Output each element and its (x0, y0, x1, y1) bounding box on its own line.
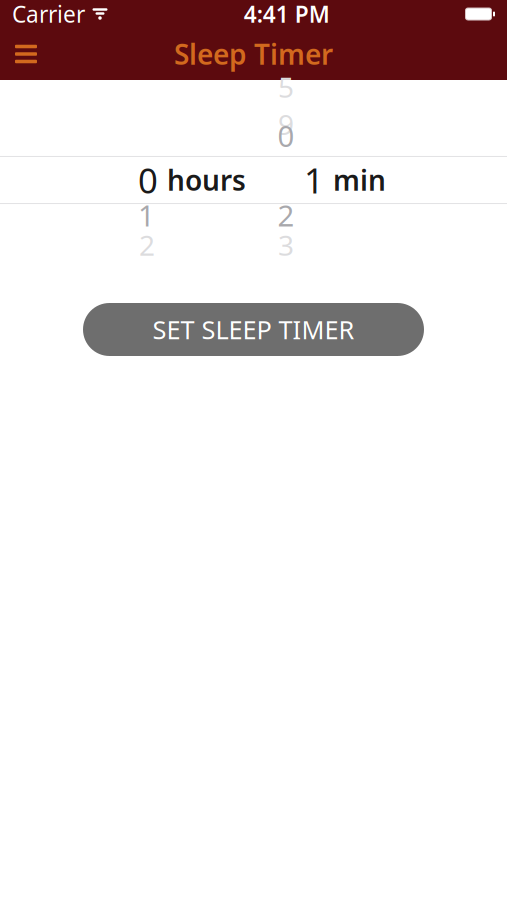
button[interactable]: Menu (0, 32, 52, 76)
staticText: Carrier (12, 0, 85, 29)
staticText: 2 (139, 226, 155, 264)
staticText: Sleep Timer (174, 35, 333, 73)
staticText: 0 (138, 157, 158, 203)
staticText: hours (167, 161, 246, 199)
staticText: min (333, 161, 386, 199)
staticText: 4:41 PM (244, 0, 330, 29)
staticText: 59 (278, 68, 294, 143)
staticText: SET SLEEP TIMER (152, 313, 354, 346)
staticText: 3 (278, 226, 294, 264)
button[interactable]: SET SLEEP TIMER (83, 303, 424, 356)
staticText: 0 (277, 116, 294, 155)
staticText: 1 (138, 195, 155, 234)
staticText: 1 (304, 157, 324, 203)
staticText: 2 (277, 195, 294, 234)
